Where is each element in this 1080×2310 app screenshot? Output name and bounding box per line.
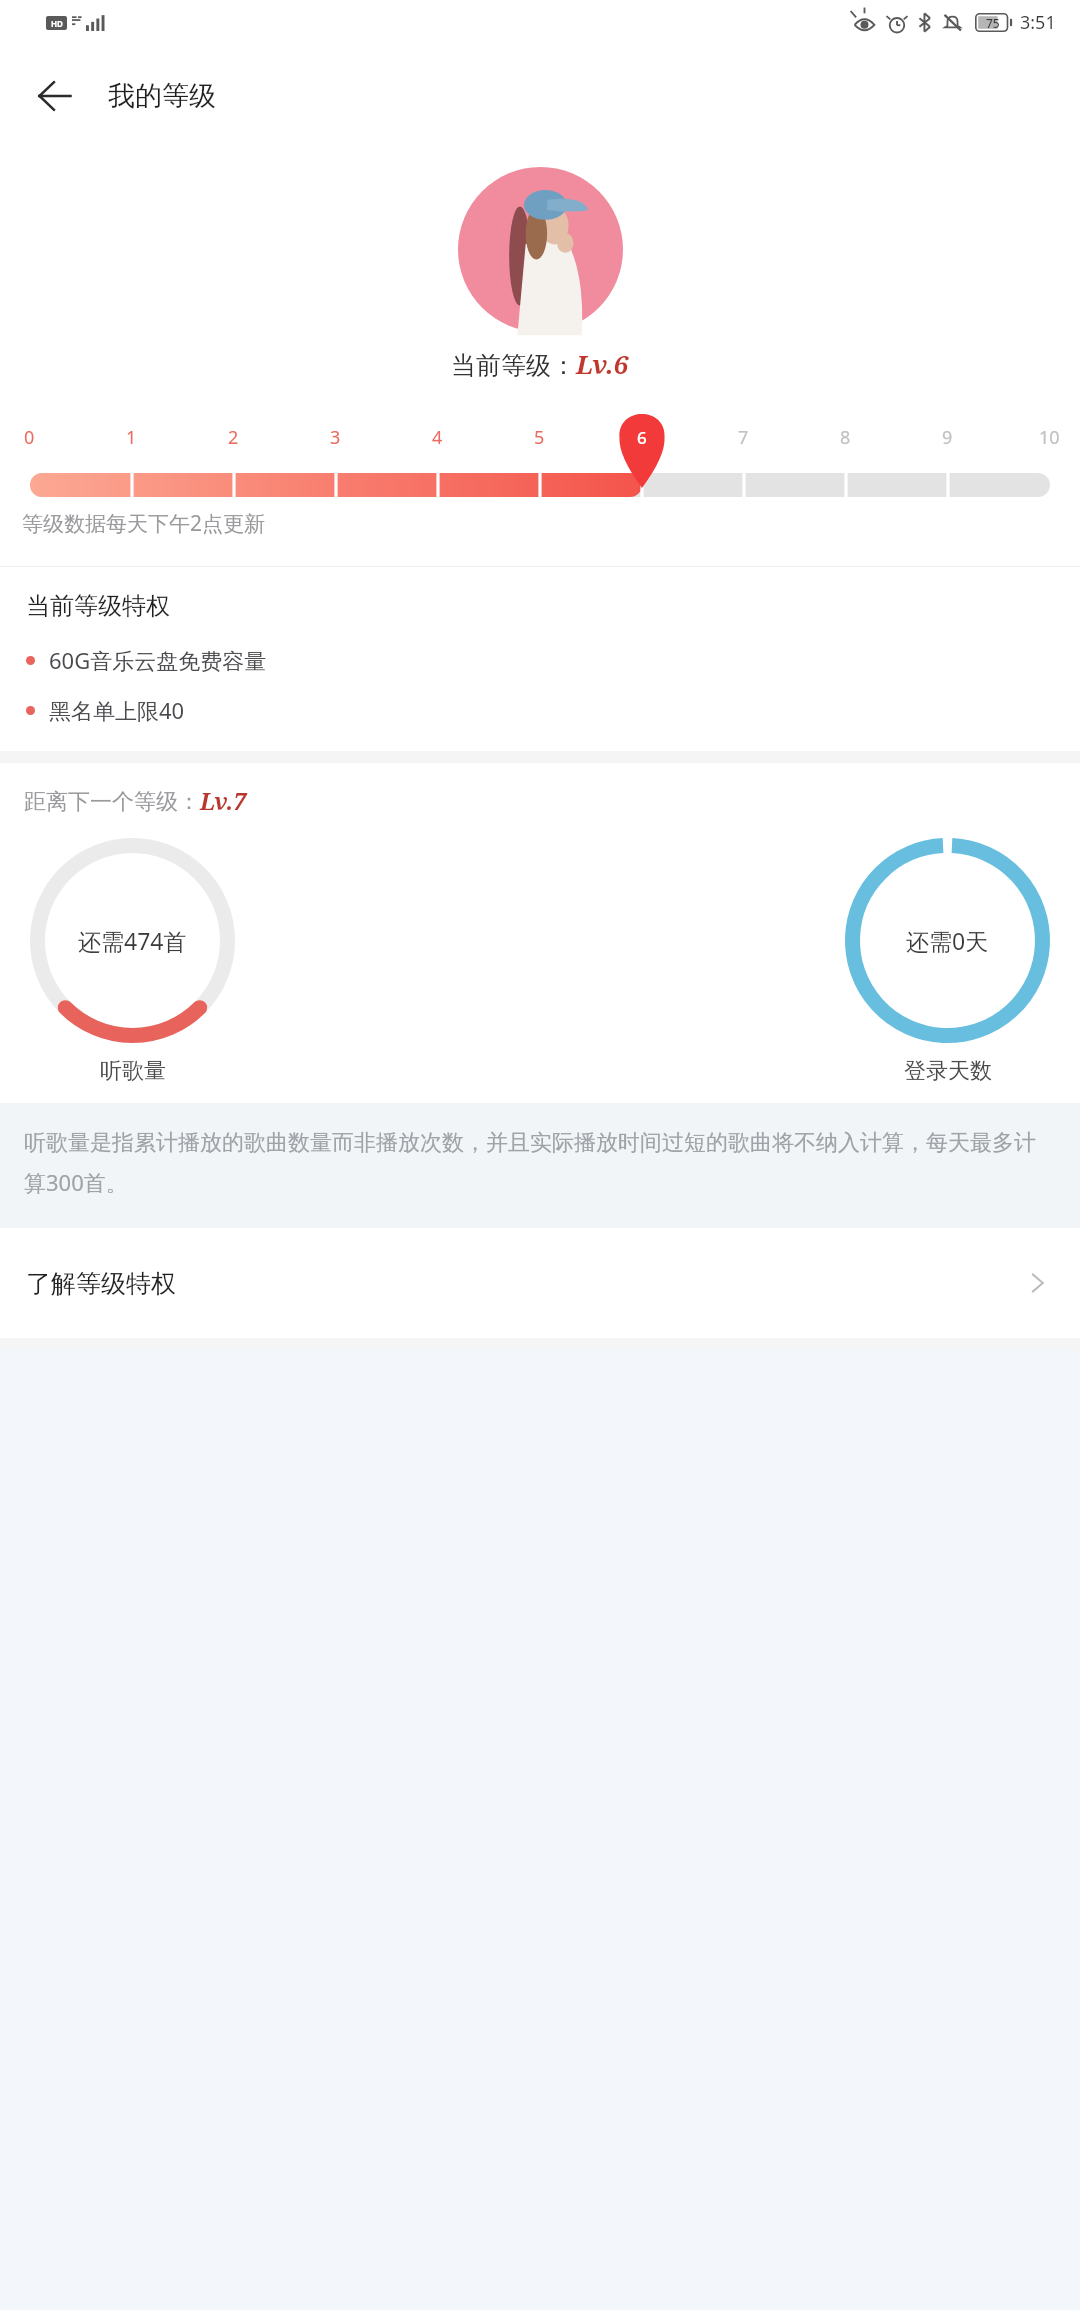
staticText: 听歌量 bbox=[100, 1057, 166, 1085]
staticText: 60G音乐云盘免费容量 bbox=[49, 645, 267, 675]
staticText: 我的等级 bbox=[108, 79, 216, 113]
staticText: 7 bbox=[738, 425, 749, 450]
staticText: 黑名单上限40 bbox=[49, 695, 185, 725]
staticText: 75 bbox=[986, 15, 1000, 31]
staticText: 8 bbox=[840, 425, 851, 450]
staticText: 9 bbox=[942, 425, 953, 450]
button[interactable]: 了解等级特权 bbox=[0, 1228, 1080, 1338]
staticText: HD bbox=[51, 18, 63, 29]
staticText: 1 bbox=[126, 425, 137, 450]
staticText: 0 bbox=[24, 425, 35, 450]
staticText: 当前等级： bbox=[451, 350, 576, 381]
staticText: 听歌量是指累计播放的歌曲数量而非播放次数，并且实际播放时间过短的歌曲将不纳入计算… bbox=[24, 1129, 1056, 1198]
staticText: 5 bbox=[534, 425, 545, 450]
staticText: 距离下一个等级： bbox=[24, 788, 200, 816]
staticText: 登录天数 bbox=[904, 1057, 992, 1085]
staticText: 3:51 bbox=[1020, 10, 1056, 35]
staticText: 等级数据每天下午2点更新 bbox=[22, 509, 266, 538]
staticText: 还需0天 bbox=[906, 925, 989, 956]
staticText: 3 bbox=[330, 425, 341, 450]
staticText: Lv.6 bbox=[576, 346, 629, 381]
staticText: 2 bbox=[228, 425, 239, 450]
button[interactable]: Back bbox=[26, 67, 84, 125]
staticText: 4 bbox=[432, 425, 443, 450]
staticText: Lv.7 bbox=[200, 785, 247, 816]
staticText: 6 bbox=[637, 426, 647, 449]
staticText: 10 bbox=[1039, 425, 1060, 450]
staticText: 当前等级特权 bbox=[26, 591, 170, 621]
staticText: 还需474首 bbox=[78, 925, 187, 956]
staticText: 了解等级特权 bbox=[26, 1268, 176, 1299]
